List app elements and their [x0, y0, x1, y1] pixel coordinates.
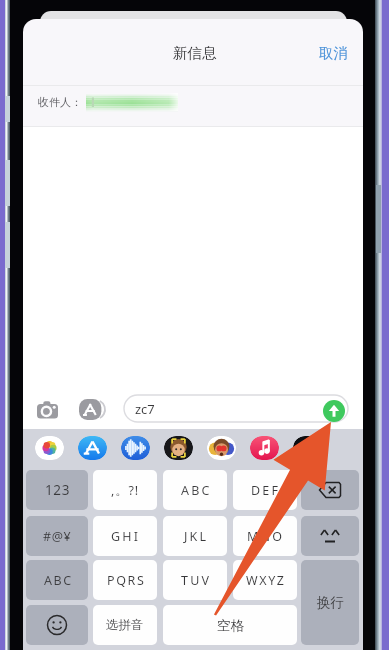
staticText: zc7 [135, 400, 155, 418]
staticText: 123 [45, 481, 70, 499]
button[interactable]: 123 [26, 470, 88, 510]
button[interactable]: 取消 [305, 40, 361, 66]
button[interactable]: Hearts [293, 436, 322, 460]
staticText: ABC [181, 482, 212, 499]
staticText: 取消 [319, 44, 348, 62]
button[interactable]: Backspace [301, 470, 359, 510]
staticText: 新信息 [173, 44, 217, 62]
button[interactable]: Photos [35, 436, 64, 460]
staticText: 空格 [217, 617, 244, 634]
button[interactable]: GHI [93, 516, 157, 556]
button[interactable]: #@¥ [26, 516, 88, 556]
button[interactable]: PQRS [93, 560, 157, 600]
button[interactable]: Camera [37, 400, 58, 420]
button[interactable]: ,。?! [93, 470, 157, 510]
button[interactable]: 收件人： [38, 90, 174, 114]
button[interactable]: 新信息 [159, 40, 231, 66]
button[interactable]: zc7 [124, 395, 348, 422]
staticText: TUV [181, 572, 212, 589]
button[interactable]: WXYZ [233, 560, 297, 600]
staticText: MNO [247, 528, 285, 545]
staticText: #@¥ [43, 528, 72, 545]
staticText: JKL [184, 528, 209, 545]
button[interactable]: Memoji [164, 436, 193, 460]
staticText: 换行 [317, 594, 344, 611]
button[interactable]: 空格 [163, 605, 297, 645]
button[interactable]: Send [323, 400, 345, 422]
button[interactable]: TUV [163, 560, 227, 600]
button[interactable]: 换行 [301, 560, 359, 645]
staticText: 选拼音 [106, 617, 144, 633]
staticText: ,。?! [111, 482, 139, 499]
staticText: ABC [44, 572, 73, 589]
button[interactable]: Memoji sticker [207, 436, 236, 460]
button[interactable]: App Store [78, 436, 107, 460]
button[interactable]: ABC [163, 470, 227, 510]
button[interactable]: Emoji [26, 605, 88, 645]
staticText: 收件人： [38, 95, 82, 109]
button[interactable]: Kaomoji [301, 516, 359, 556]
button[interactable]: Apple Music [250, 436, 279, 460]
staticText: GHI [111, 528, 141, 545]
button[interactable]: 选拼音 [93, 605, 157, 645]
button[interactable]: JKL [163, 516, 227, 556]
staticText: PQRS [107, 572, 146, 589]
staticText: DEF [251, 482, 281, 499]
button[interactable]: Apps [79, 399, 105, 420]
staticText: WXYZ [246, 572, 286, 589]
button[interactable]: DEF [233, 470, 297, 510]
button[interactable]: Digital Touch [121, 436, 150, 460]
button[interactable]: MNO [233, 516, 297, 556]
button[interactable]: ABC [26, 560, 88, 600]
